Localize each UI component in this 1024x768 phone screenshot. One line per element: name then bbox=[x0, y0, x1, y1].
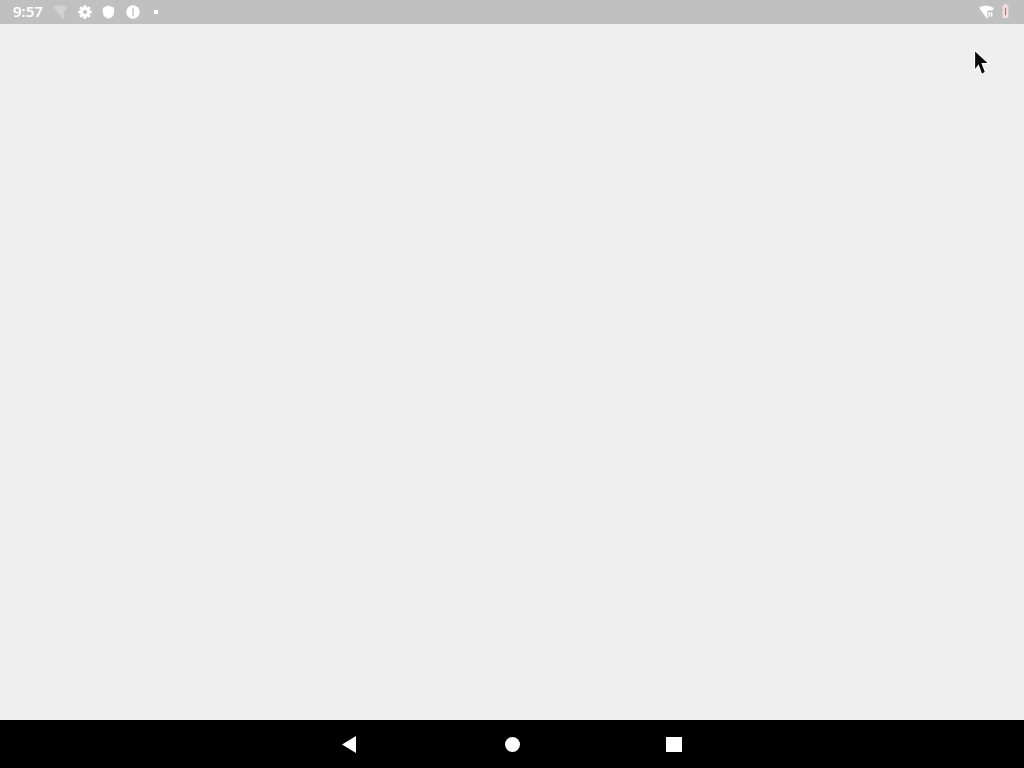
button[interactable]: Back bbox=[325, 720, 373, 768]
button[interactable]: Home bbox=[488, 720, 536, 768]
button[interactable]: Recent apps bbox=[650, 720, 698, 768]
staticText: 9:57 bbox=[13, 1, 43, 21]
